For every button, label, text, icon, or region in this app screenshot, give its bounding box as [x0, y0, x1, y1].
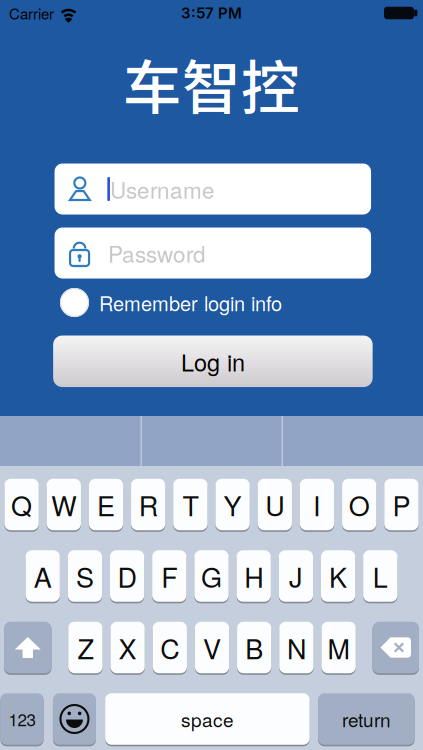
button[interactable]: Z [68, 621, 102, 674]
button[interactable]: Q [4, 478, 39, 531]
staticText: N [287, 628, 306, 667]
staticText: C [160, 628, 179, 667]
staticText: space [181, 705, 234, 733]
staticText: Carrier [9, 2, 54, 24]
staticText: Log in [181, 344, 245, 378]
button[interactable]: L [363, 549, 397, 603]
staticText: 123 [8, 707, 35, 731]
button[interactable]: space [105, 692, 310, 746]
button[interactable]: V [195, 621, 229, 674]
button[interactable]: Remember login info [54, 288, 371, 317]
button[interactable]: X [110, 621, 145, 674]
staticText: Username [110, 173, 215, 205]
staticText: S [76, 557, 94, 595]
staticText: O [349, 485, 370, 524]
button[interactable]: P [384, 478, 418, 531]
button[interactable]: Log in [53, 336, 373, 387]
button[interactable]: W [47, 478, 81, 531]
staticText: H [244, 557, 263, 595]
button[interactable]: B [237, 621, 271, 674]
staticText: Remember login info [99, 288, 282, 317]
staticText: I [313, 485, 321, 524]
button[interactable]: S [68, 549, 102, 603]
button[interactable]: N [279, 621, 313, 674]
button[interactable]: T [173, 478, 207, 531]
staticText: L [373, 557, 388, 595]
button[interactable]: G [194, 549, 229, 603]
staticText: 车智控 [123, 41, 300, 126]
button[interactable]: Shift [4, 621, 51, 674]
staticText: K [329, 557, 347, 595]
button[interactable]: Password [55, 227, 371, 278]
staticText: 3:57 PM [181, 4, 242, 22]
button[interactable]: Username [55, 163, 371, 214]
staticText: return [342, 705, 391, 733]
staticText: G [201, 557, 222, 595]
staticText: Q [11, 485, 32, 524]
staticText: B [245, 628, 263, 667]
staticText: X [119, 628, 137, 667]
staticText: Password [108, 237, 206, 269]
button[interactable]: M [321, 621, 356, 674]
staticText: T [182, 485, 198, 524]
staticText: P [392, 485, 410, 524]
staticText: M [328, 628, 350, 667]
button[interactable]: U [258, 478, 292, 531]
button[interactable]: Delete [372, 621, 419, 674]
button[interactable]: K [321, 549, 355, 603]
staticText: U [265, 485, 284, 524]
staticText: D [118, 557, 137, 595]
button[interactable]: H [236, 549, 271, 603]
button[interactable]: Y [215, 478, 250, 531]
button[interactable]: 123 [0, 692, 44, 746]
button[interactable]: F [152, 549, 186, 603]
button[interactable]: return [318, 692, 415, 746]
button[interactable]: Emoji [53, 692, 96, 746]
staticText: W [51, 485, 76, 524]
staticText: R [139, 485, 158, 524]
button[interactable]: J [279, 549, 313, 603]
staticText: F [161, 557, 177, 595]
button[interactable]: O [342, 478, 376, 531]
button[interactable]: E [89, 478, 123, 531]
button[interactable]: R [131, 478, 165, 531]
button[interactable]: C [153, 621, 187, 674]
staticText: Y [224, 485, 242, 524]
staticText: E [97, 485, 115, 524]
staticText: A [34, 557, 52, 595]
staticText: V [203, 628, 221, 667]
staticText: J [289, 557, 303, 595]
staticText: Z [77, 628, 93, 667]
button[interactable]: I [300, 478, 334, 531]
button[interactable]: D [110, 549, 144, 603]
button[interactable]: A [25, 549, 60, 603]
